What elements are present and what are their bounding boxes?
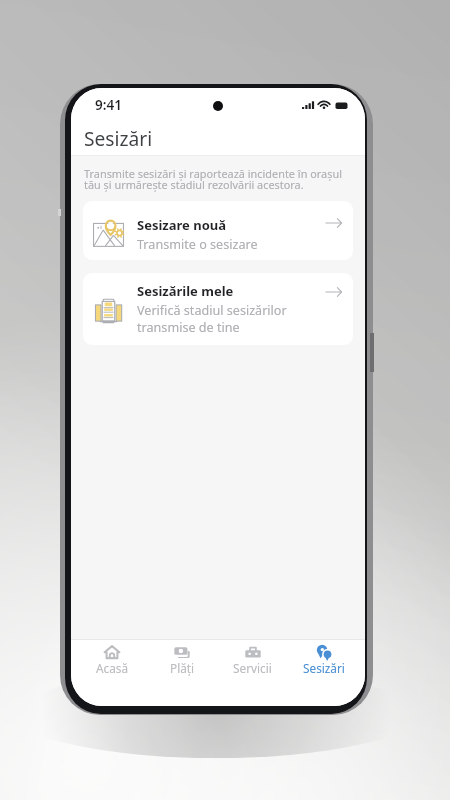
staticText: Sesizări [84, 125, 153, 151]
staticText: Transmite o sesizare [137, 236, 258, 253]
staticText: Transmite sesizări și raportează inciden… [84, 166, 342, 192]
button[interactable]: Sesizări [288, 640, 359, 706]
button[interactable]: Sesizările mele [83, 273, 353, 345]
staticText: Servicii [233, 660, 272, 676]
staticText: 9:41 [95, 96, 122, 114]
button[interactable]: Acasă [77, 640, 147, 706]
staticText: Sesizare nouă [137, 216, 227, 234]
button[interactable]: Sesizare nouă [83, 201, 353, 260]
staticText: Acasă [96, 660, 129, 676]
button[interactable]: Plăți [147, 640, 217, 706]
button[interactable]: Servicii [217, 640, 288, 706]
staticText: Plăți [170, 660, 195, 676]
staticText: Verifică stadiul sesizărilor transmise d… [137, 302, 287, 336]
staticText: Sesizări [303, 660, 345, 676]
staticText: Sesizările mele [137, 282, 234, 300]
